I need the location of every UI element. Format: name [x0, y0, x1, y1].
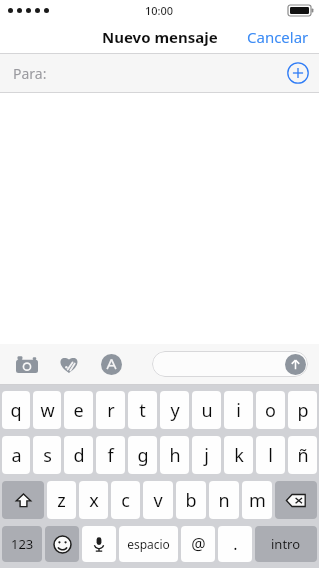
button[interactable]: w — [33, 391, 61, 429]
staticText: l — [268, 443, 273, 468]
button[interactable]: Enviar — [152, 351, 308, 377]
button[interactable]: espacio — [119, 526, 178, 562]
staticText: ñ — [297, 443, 309, 468]
button[interactable]: Añadir contacto — [287, 62, 309, 84]
button[interactable]: l — [256, 436, 285, 474]
button[interactable]: h — [160, 436, 189, 474]
staticText: s — [43, 443, 52, 468]
staticText: o — [265, 398, 276, 423]
button[interactable]: Borrar — [275, 481, 317, 519]
staticText: q — [10, 398, 22, 423]
staticText: 10:00 — [145, 3, 174, 18]
button[interactable]: e — [64, 391, 93, 429]
staticText: r — [107, 398, 115, 423]
button[interactable]: Cámara — [14, 351, 40, 377]
button[interactable]: a — [2, 436, 30, 474]
staticText: f — [107, 443, 114, 468]
button[interactable]: u — [192, 391, 221, 429]
staticText: v — [153, 488, 163, 513]
button[interactable]: y — [160, 391, 189, 429]
staticText: z — [57, 488, 66, 513]
staticText: i — [236, 398, 241, 423]
button[interactable]: d — [64, 436, 93, 474]
button[interactable]: z — [47, 481, 76, 519]
button[interactable]: . — [218, 526, 252, 562]
button[interactable]: @ — [181, 526, 215, 562]
staticText: a — [11, 443, 22, 468]
staticText: espacio — [127, 536, 170, 552]
staticText: . — [233, 533, 238, 555]
staticText: Para: — [13, 64, 47, 83]
button[interactable]: Cancelar — [237, 21, 319, 53]
staticText: Nuevo mensaje — [102, 27, 218, 47]
button[interactable]: m — [242, 481, 272, 519]
staticText: y — [170, 398, 180, 423]
staticText: b — [185, 488, 197, 513]
button[interactable]: v — [143, 481, 173, 519]
button[interactable]: Mayúsculas — [2, 481, 44, 519]
button[interactable]: f — [96, 436, 125, 474]
button[interactable]: g — [128, 436, 157, 474]
button[interactable]: o — [256, 391, 285, 429]
button[interactable]: x — [79, 481, 108, 519]
button[interactable]: k — [224, 436, 253, 474]
button[interactable]: Dictado — [82, 526, 116, 562]
staticText: d — [73, 443, 85, 468]
button[interactable]: t — [128, 391, 157, 429]
button[interactable]: n — [209, 481, 239, 519]
button[interactable]: Digital Touch — [56, 351, 82, 377]
staticText: p — [297, 398, 309, 423]
staticText: t — [139, 398, 146, 423]
button[interactable]: i — [224, 391, 253, 429]
staticText: k — [234, 443, 244, 468]
button[interactable]: Apps — [98, 351, 124, 377]
staticText: n — [218, 488, 230, 513]
staticText: u — [201, 398, 213, 423]
button[interactable]: ñ — [288, 436, 317, 474]
button[interactable]: Para: — [0, 54, 319, 92]
staticText: c — [121, 488, 130, 513]
button[interactable]: Emoji — [45, 526, 79, 562]
button[interactable]: p — [288, 391, 317, 429]
staticText: w — [40, 398, 55, 423]
button[interactable]: r — [96, 391, 125, 429]
button[interactable]: q — [2, 391, 30, 429]
staticText: m — [249, 488, 266, 513]
staticText: @ — [191, 533, 206, 555]
staticText: Cancelar — [247, 27, 309, 47]
button[interactable]: 123 — [2, 526, 42, 562]
staticText: e — [73, 398, 84, 423]
staticText: j — [204, 443, 209, 468]
staticText: intro — [271, 535, 301, 553]
button[interactable]: intro — [255, 526, 317, 562]
button[interactable]: j — [192, 436, 221, 474]
button[interactable]: s — [33, 436, 61, 474]
staticText: 123 — [11, 535, 34, 553]
button[interactable]: c — [111, 481, 140, 519]
staticText: g — [137, 443, 149, 468]
staticText: h — [169, 443, 181, 468]
button[interactable]: b — [176, 481, 206, 519]
button[interactable]: Enviar — [285, 354, 306, 375]
staticText: x — [89, 488, 99, 513]
